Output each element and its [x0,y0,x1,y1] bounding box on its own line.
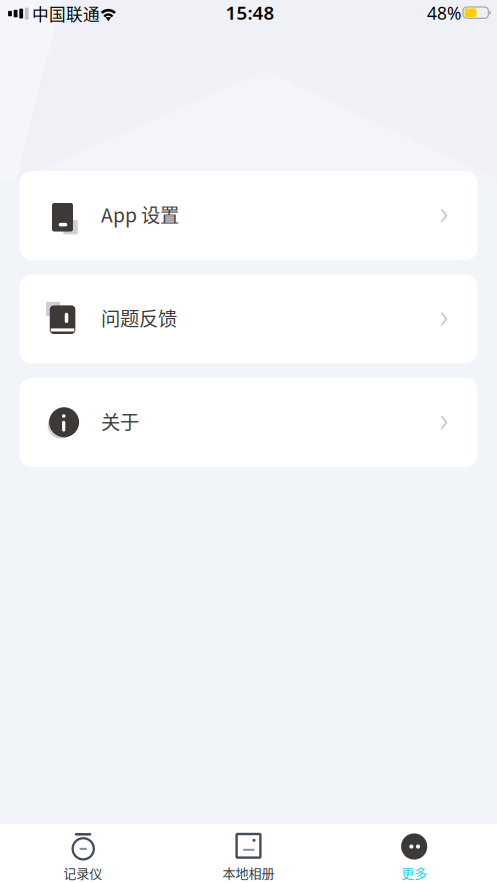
staticText: 关于 [101,407,139,435]
button[interactable]: App 设置 [19,171,477,260]
staticText: 记录仪 [63,863,102,882]
staticText: 更多 [401,863,427,882]
staticText: 48% [427,1,461,24]
button[interactable]: 本地相册 [166,824,331,883]
staticText: 本地相册 [222,863,274,882]
button[interactable]: 更多 [331,824,497,883]
staticText: App 设置 [101,200,179,228]
staticText: 15:48 [225,0,274,25]
button[interactable]: 记录仪 [0,824,166,883]
button[interactable]: 关于 [19,378,477,467]
button[interactable]: 问题反馈 [19,274,477,363]
staticText: 问题反馈 [101,303,177,331]
staticText: 中国联通 [32,1,100,26]
